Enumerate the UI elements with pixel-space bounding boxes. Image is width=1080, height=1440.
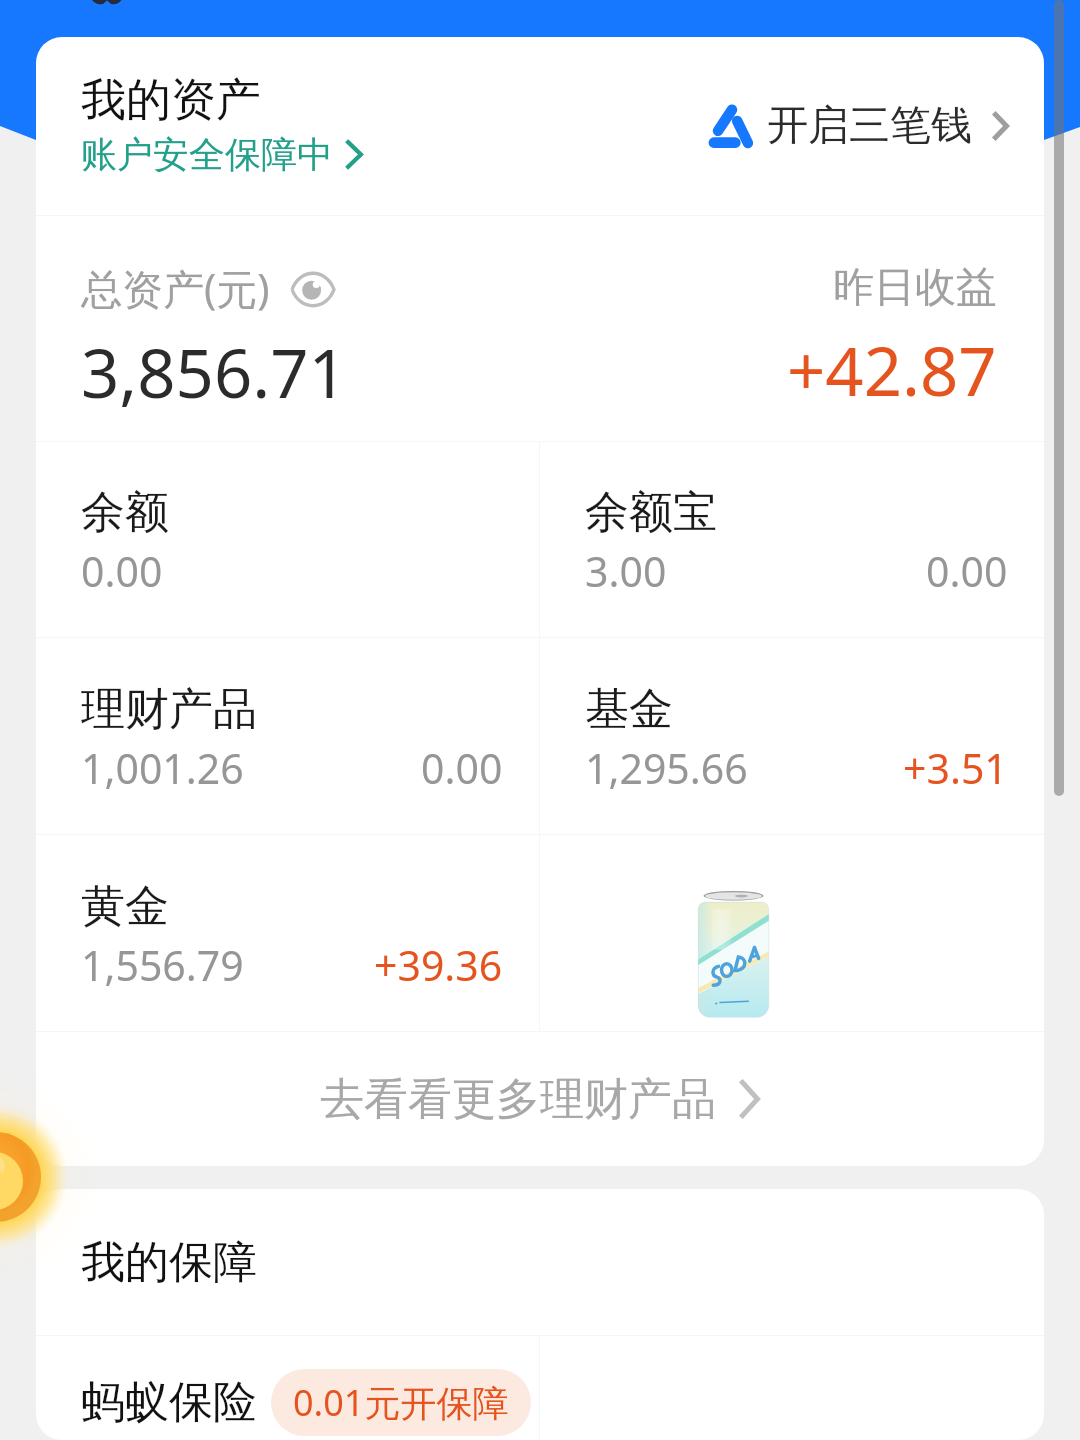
button[interactable]: 基金 [540, 638, 1044, 834]
button[interactable]: 我的保障 [36, 1189, 1044, 1335]
staticText: 余额宝 [585, 485, 717, 540]
button[interactable]: 黄金 [36, 835, 539, 1031]
staticText: 1,295.66 [585, 740, 748, 796]
staticText: 3,856.71 [81, 326, 347, 417]
staticText: 昨日收益 [833, 262, 997, 314]
staticText: 3.00 [585, 543, 667, 599]
staticText: +39.36 [374, 937, 503, 993]
button[interactable]: 余额 [36, 442, 539, 637]
staticText: +3.51 [903, 740, 1008, 796]
staticText: 0.00 [81, 543, 163, 599]
staticText: 开启三笔钱 [767, 100, 972, 152]
staticText: 余额 [81, 485, 169, 540]
button[interactable]: 蚂蚁保险 [36, 1336, 539, 1440]
staticText: 0.01元开保障 [293, 1378, 509, 1427]
staticText: 0.00 [421, 740, 503, 796]
button[interactable]: 理财产品 [36, 638, 539, 834]
button[interactable]: 我的资产 [36, 37, 1044, 215]
staticText: 我的保障 [81, 1235, 257, 1290]
other: Toggle visibility [290, 272, 336, 307]
staticText: 去看看更多理财产品 [320, 1072, 716, 1127]
button[interactable]: 去看看更多理财产品 [36, 1032, 1044, 1166]
staticText: 蚂蚁保险 [81, 1375, 257, 1430]
button[interactable]: Soda promotion [540, 835, 1044, 1031]
staticText: 总资产(元) [81, 260, 270, 316]
button[interactable]: 总资产(元) [36, 216, 1044, 441]
button[interactable]: 余额宝 [540, 442, 1044, 637]
staticText: 黄金 [81, 879, 169, 934]
staticText: 我的资产 [81, 72, 261, 129]
staticText: 1,556.79 [81, 937, 244, 993]
staticText: +42.87 [787, 324, 997, 415]
staticText: 理财产品 [81, 682, 257, 737]
staticText: 账户安全保障中 [81, 132, 333, 177]
staticText: 1,001.26 [81, 740, 244, 796]
staticText: 0.00 [926, 543, 1008, 599]
staticText: 基金 [585, 682, 673, 737]
